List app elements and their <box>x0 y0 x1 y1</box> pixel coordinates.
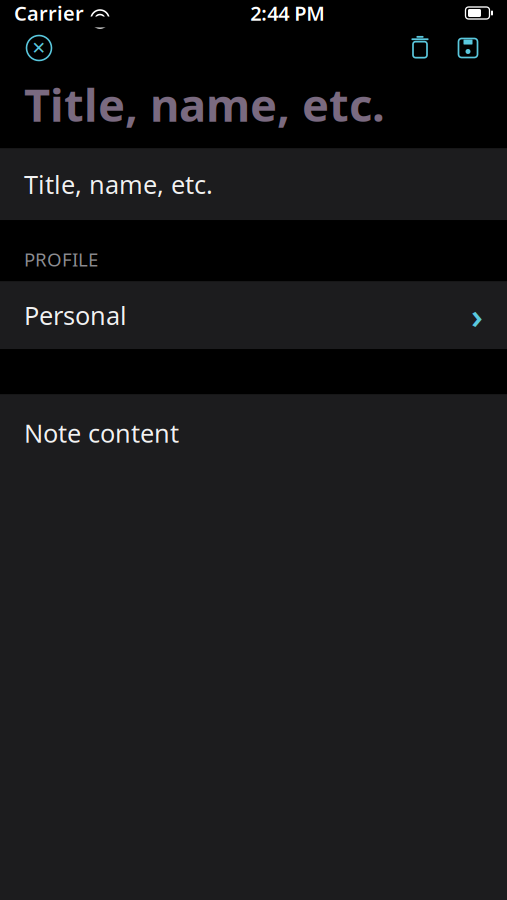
button[interactable]: Save <box>444 26 492 70</box>
button[interactable]: Personal <box>0 281 507 349</box>
staticText: › <box>471 292 483 338</box>
button[interactable]: Close <box>15 26 63 70</box>
staticText: Title, name, etc. <box>24 167 213 201</box>
button[interactable]: Delete <box>396 26 444 70</box>
staticText: Note content <box>24 416 179 450</box>
staticText: PROFILE <box>24 247 98 272</box>
staticText: 2:44 PM <box>250 0 325 26</box>
staticText: Title, name, etc. <box>24 74 385 134</box>
staticText: Personal <box>24 298 127 332</box>
staticText: Carrier <box>14 0 84 26</box>
staticText: ✕ <box>31 38 46 58</box>
